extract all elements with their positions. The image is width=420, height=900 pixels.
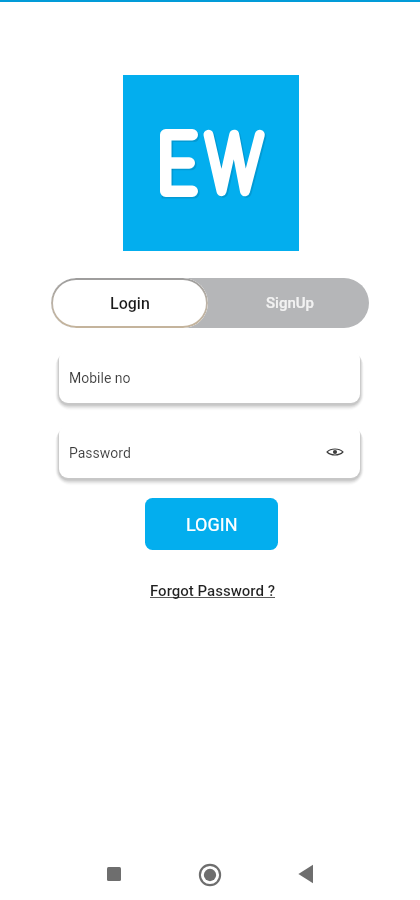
button[interactable] [51, 278, 210, 328]
button[interactable]: Back [294, 862, 318, 886]
staticText: Login [110, 294, 150, 313]
button[interactable]: Home [198, 863, 222, 887]
button[interactable]: Login [51, 278, 208, 328]
button[interactable]: Password [59, 425, 360, 478]
button[interactable]: Mobile no [59, 350, 360, 403]
button[interactable]: Recent apps [102, 862, 126, 886]
button[interactable]: SignUp [210, 278, 369, 328]
staticText: LOGIN [186, 514, 238, 535]
staticText: Mobile no [69, 370, 131, 386]
staticText: SignUp [266, 294, 314, 312]
button[interactable]: Show password [322, 439, 348, 465]
button[interactable]: LOGIN [145, 498, 278, 550]
button[interactable]: Forgot Password ? [150, 582, 276, 600]
staticText: Password [69, 445, 131, 461]
